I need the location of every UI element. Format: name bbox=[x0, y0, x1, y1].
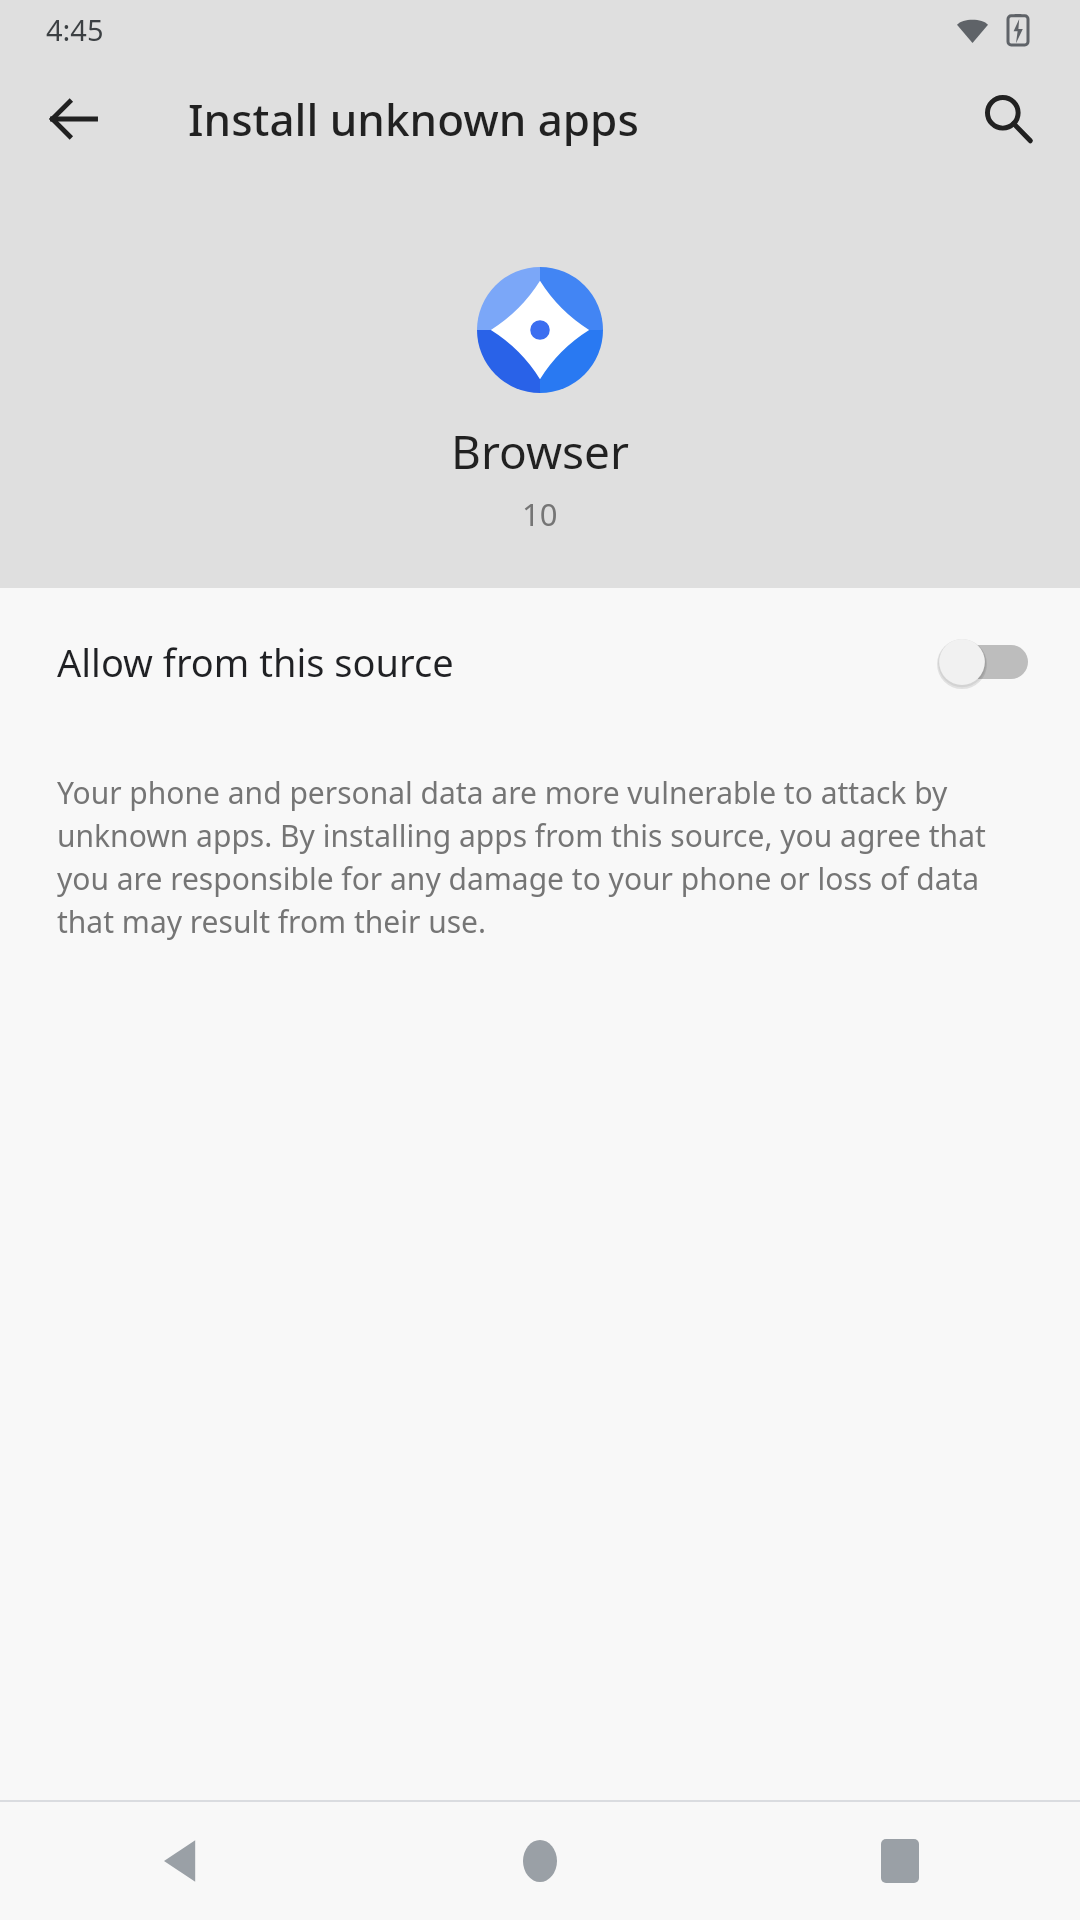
staticText: 10 bbox=[522, 493, 558, 535]
staticText: Allow from this source bbox=[57, 636, 454, 688]
button[interactable]: Back bbox=[0, 1802, 360, 1920]
button[interactable]: Search bbox=[960, 71, 1056, 167]
button[interactable]: Home bbox=[360, 1802, 720, 1920]
staticText: 4:45 bbox=[46, 10, 104, 49]
button[interactable]: Back bbox=[26, 71, 122, 167]
staticText: Install unknown apps bbox=[188, 89, 639, 149]
staticText: Browser bbox=[451, 420, 630, 483]
button[interactable]: Recents bbox=[720, 1802, 1080, 1920]
button[interactable]: Allow from this source bbox=[0, 588, 1080, 736]
staticText: Your phone and personal data are more vu… bbox=[57, 772, 1028, 942]
